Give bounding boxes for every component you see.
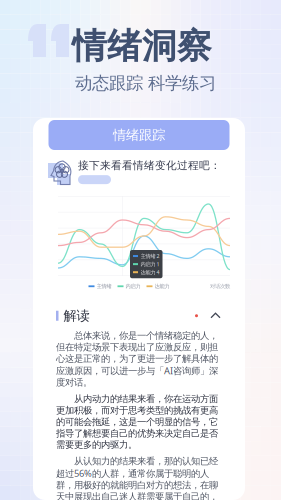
staticText: 从内动力的结果来看，你在运动方面更加积极，而对于思考类型的挑战有更高的可能会拖延… (56, 393, 218, 450)
button[interactable]: 收起 (209, 311, 222, 320)
staticText: 主情绪 (96, 283, 111, 290)
staticText: 内启力 1 (140, 261, 159, 268)
staticText: 情绪跟踪 (113, 127, 165, 143)
staticText: 接下来看看情绪变化过程吧： (78, 159, 221, 172)
staticText: 动态跟踪 科学练习 (75, 73, 216, 94)
staticText: 主情绪 2 (140, 252, 159, 260)
staticText: 从认知力的结果来看，那的认知已经超过56%的人群，通常你属于聪明的人群，用极好的… (56, 455, 218, 500)
staticText: 达能力 (154, 283, 169, 290)
staticText: 达能力 4 (140, 269, 159, 276)
staticText: 内启力 (125, 283, 140, 290)
staticText: 解读 (63, 308, 89, 324)
staticText: 对话次数 (210, 283, 230, 290)
staticText: 情绪洞察 (72, 25, 212, 68)
staticText: 总体来说，你是一个情绪稳定的人，但在特定场景下表现出了应激反应，则担心这是正常的… (56, 330, 218, 388)
